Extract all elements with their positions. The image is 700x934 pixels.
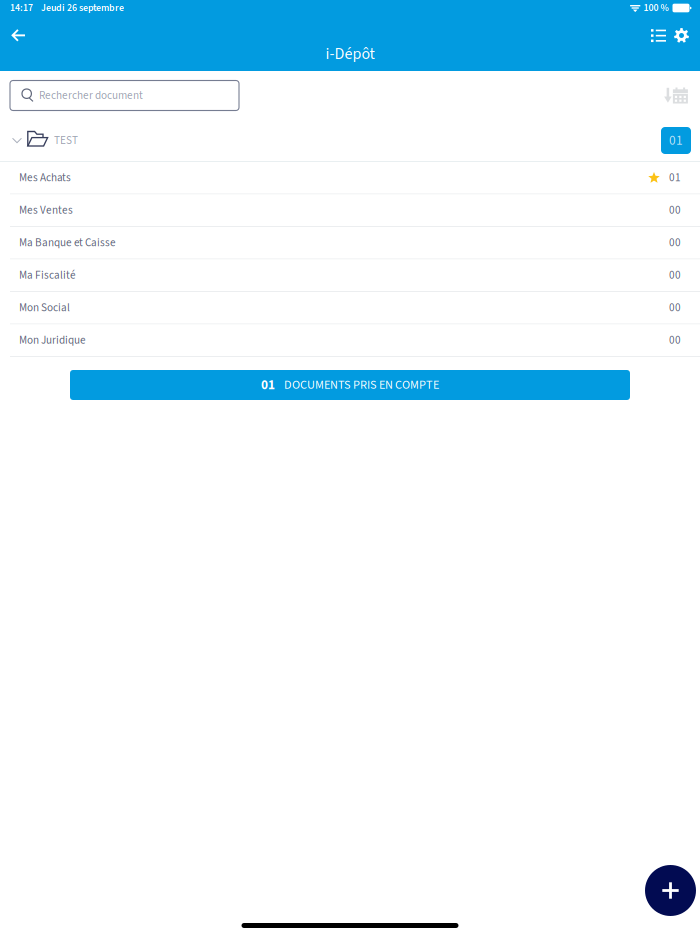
button[interactable]: 01 <box>70 370 630 400</box>
button[interactable]: Mon Juridique <box>0 324 700 357</box>
staticText: 00 <box>669 235 681 251</box>
staticText: 01 <box>669 170 681 186</box>
button[interactable]: Ma Banque et Caisse <box>0 227 700 259</box>
button[interactable]: Mes Ventes <box>0 194 700 227</box>
staticText: 00 <box>669 332 681 348</box>
staticText: 00 <box>669 300 681 316</box>
staticText: Rechercher document <box>39 87 143 103</box>
staticText: Mon Social <box>19 300 70 316</box>
button[interactable]: Ma Fiscalité <box>0 259 700 292</box>
staticText: Mes Achats <box>19 170 71 186</box>
button[interactable]: Settings <box>667 21 696 50</box>
button[interactable]: Add document <box>645 865 696 916</box>
staticText: DOCUMENTS PRIS EN COMPTE <box>284 376 439 394</box>
staticText: 01 <box>261 375 275 394</box>
button[interactable]: Mon Social <box>0 292 700 324</box>
staticText: TEST <box>54 132 78 148</box>
staticText: 00 <box>669 267 681 283</box>
staticText: Mon Juridique <box>19 332 86 348</box>
button[interactable]: List view <box>644 22 673 49</box>
staticText: 14:17 <box>10 1 33 15</box>
button[interactable]: Rechercher document <box>10 80 239 110</box>
button[interactable]: Back <box>4 22 32 49</box>
button[interactable]: Mes Achats <box>0 162 700 194</box>
staticText: Ma Banque et Caisse <box>19 235 116 251</box>
staticText: 100 % <box>643 1 668 15</box>
button[interactable]: TEST <box>0 120 700 161</box>
staticText: Ma Fiscalité <box>19 267 76 283</box>
staticText: 01 <box>669 131 683 150</box>
staticText: Jeudi 26 septembre <box>41 1 124 15</box>
button[interactable]: Sort by date <box>658 81 694 109</box>
staticText: i-Dépôt <box>325 43 374 65</box>
staticText: Mes Ventes <box>19 202 73 218</box>
staticText: 00 <box>669 202 681 218</box>
